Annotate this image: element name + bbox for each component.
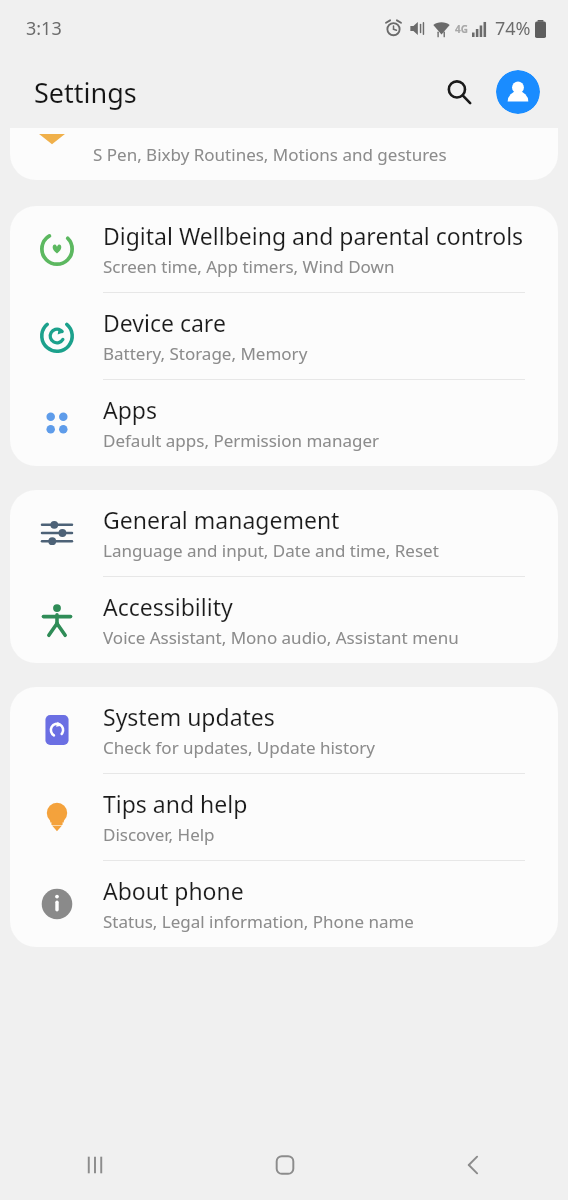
- staticText: Tips and help: [103, 788, 248, 819]
- button[interactable]: General management: [10, 490, 558, 576]
- button[interactable]: System updates: [10, 687, 558, 773]
- staticText: 4G: [455, 22, 468, 36]
- staticText: 3:13: [26, 16, 62, 41]
- staticText: Language and input, Date and time, Reset: [103, 539, 439, 562]
- button[interactable]: About phone: [10, 861, 558, 947]
- staticText: Voice Assistant, Mono audio, Assistant m…: [103, 626, 459, 649]
- staticText: Status, Legal information, Phone name: [103, 910, 414, 933]
- button[interactable]: Search: [436, 69, 482, 115]
- button[interactable]: Device care: [10, 293, 558, 379]
- button[interactable]: Home: [190, 1130, 379, 1200]
- staticText: Discover, Help: [103, 823, 215, 846]
- button[interactable]: Digital Wellbeing and parental controls: [10, 206, 558, 292]
- button[interactable]: Account: [496, 70, 540, 114]
- staticText: Settings: [34, 74, 137, 111]
- button[interactable]: Back: [379, 1130, 568, 1200]
- button[interactable]: Tips and help: [10, 774, 558, 860]
- staticText: Digital Wellbeing and parental controls: [103, 220, 524, 251]
- staticText: S Pen, Bixby Routines, Motions and gestu…: [93, 143, 447, 166]
- staticText: About phone: [103, 875, 244, 906]
- staticText: Check for updates, Update history: [103, 736, 376, 759]
- staticText: Screen time, App timers, Wind Down: [103, 255, 395, 278]
- staticText: Apps: [103, 394, 158, 425]
- staticText: Battery, Storage, Memory: [103, 342, 308, 365]
- button[interactable]: S Pen, Bixby Routines, Motions and gestu…: [10, 128, 558, 180]
- staticText: General management: [103, 504, 340, 535]
- button[interactable]: Recent apps: [0, 1130, 190, 1200]
- staticText: Device care: [103, 307, 226, 338]
- staticText: 74%: [495, 16, 531, 41]
- button[interactable]: Accessibility: [10, 577, 558, 663]
- staticText: System updates: [103, 701, 275, 732]
- staticText: Accessibility: [103, 591, 233, 622]
- button[interactable]: Apps: [10, 380, 558, 466]
- staticText: Default apps, Permission manager: [103, 429, 379, 452]
